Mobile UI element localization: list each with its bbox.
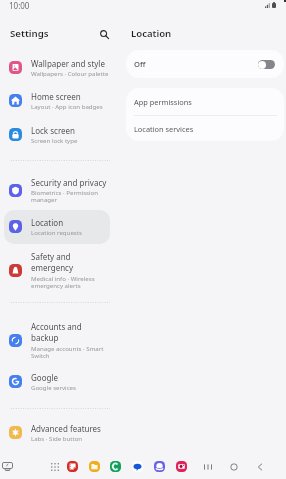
staticText: Off (134, 59, 146, 69)
staticText: Wallpaper and style (31, 58, 105, 69)
staticText: Security and privacy (31, 177, 107, 188)
staticText: Biometrics · Permission manager (31, 188, 111, 204)
button[interactable]: Search (96, 26, 112, 42)
staticText: Location (31, 217, 64, 228)
button[interactable]: Google (4, 367, 110, 396)
staticText: Screen lock type (31, 136, 78, 144)
staticText: App permissions (134, 97, 192, 107)
button[interactable]: Calculator (110, 461, 121, 472)
staticText: 10:00 (9, 0, 30, 11)
staticText: Wallpapers · Colour palette (31, 69, 109, 77)
button[interactable]: Samsung Notes (67, 461, 78, 472)
button[interactable]: Security and privacy (4, 172, 110, 209)
staticText: Location services (134, 124, 194, 134)
button[interactable]: Wallpaper and style (4, 53, 110, 82)
button[interactable]: DeX mode (0, 459, 14, 473)
staticText: Settings (10, 27, 49, 40)
button[interactable]: Safety and emergency (4, 246, 110, 295)
button[interactable]: Location (4, 212, 110, 241)
staticText: Lock screen (31, 125, 76, 136)
button[interactable]: Internet (154, 461, 165, 472)
button[interactable]: Home (226, 459, 242, 475)
staticText: Location (131, 27, 172, 40)
button[interactable]: All apps (48, 460, 62, 474)
button[interactable]: Location services (126, 116, 284, 141)
button[interactable]: Messages (132, 461, 143, 472)
staticText: Home screen (31, 91, 81, 102)
staticText: Location requests (31, 228, 82, 236)
button[interactable]: Camera (176, 461, 187, 472)
button[interactable]: My Files (89, 461, 100, 472)
button[interactable]: Recents (200, 459, 216, 475)
button[interactable]: Home screen (4, 86, 110, 115)
staticText: Advanced features (31, 423, 101, 434)
staticText: Google (31, 372, 58, 383)
button[interactable]: Lock screen (4, 120, 110, 149)
button[interactable]: App permissions (126, 88, 284, 115)
button[interactable]: Advanced features (4, 418, 110, 447)
staticText: Manage accounts · Smart Switch (31, 344, 111, 360)
staticText: Google services (31, 383, 76, 391)
button[interactable]: Accounts and backup (4, 316, 110, 365)
staticText: Accounts and backup (31, 321, 111, 344)
button[interactable]: Back (252, 459, 268, 475)
staticText: Medical info · Wireless emergency alerts (31, 274, 111, 290)
staticText: Labs · Side button (31, 434, 83, 442)
staticText: Layout · App icon badges (31, 102, 103, 110)
button[interactable]: Off (126, 50, 284, 78)
staticText: Safety and emergency (31, 251, 111, 274)
